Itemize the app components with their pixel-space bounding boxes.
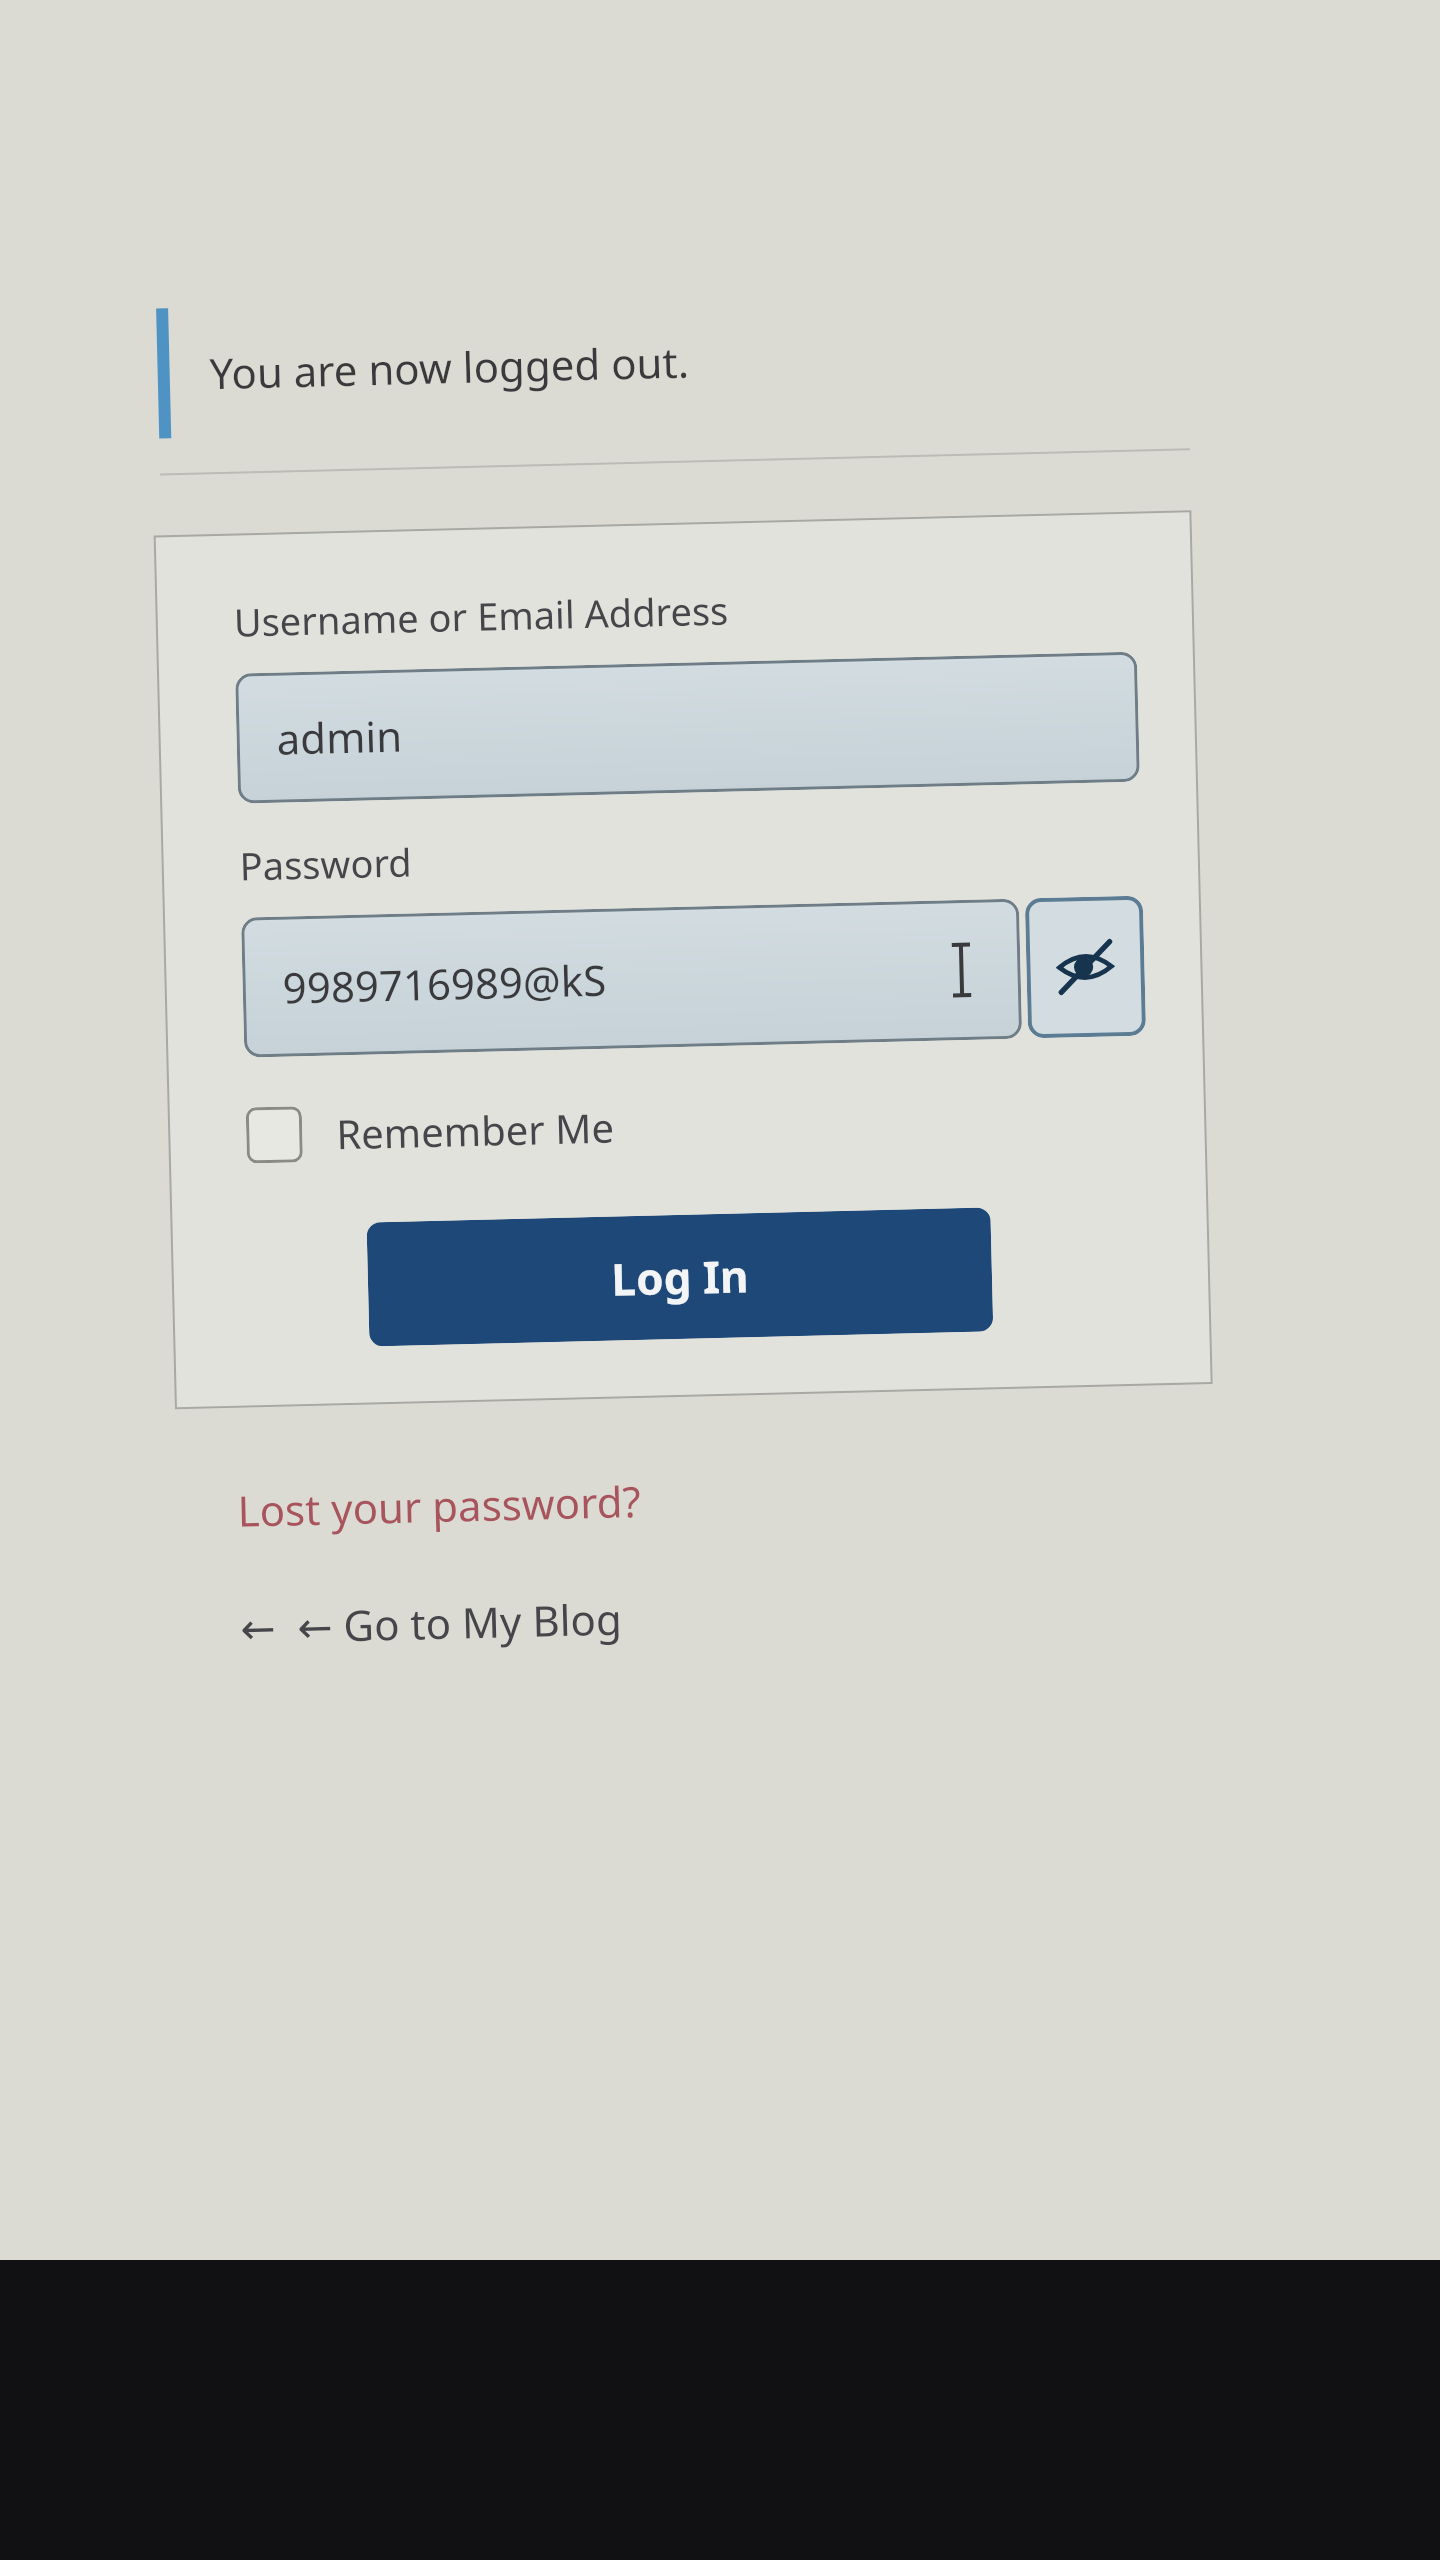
- staticText: Log In: [610, 1245, 750, 1309]
- staticText: Username or Email Address: [233, 584, 729, 648]
- button[interactable]: Show password: [1025, 896, 1146, 1038]
- button[interactable]: ← ← Go to My Blog: [239, 1581, 623, 1664]
- staticText: Password: [239, 835, 412, 892]
- button[interactable]: Log In: [366, 1207, 993, 1347]
- button[interactable]: admin: [235, 652, 1140, 804]
- staticText: ← ← Go to My Blog: [240, 1589, 623, 1656]
- staticText: Remember Me: [336, 1099, 615, 1160]
- staticText: 9989716989@kS: [282, 951, 607, 1016]
- staticText: You are now logged out.: [209, 332, 690, 401]
- staticText: admin: [276, 707, 403, 767]
- button[interactable]: Remember Me: [245, 1092, 615, 1169]
- button[interactable]: 9989716989@kS: [241, 899, 1022, 1058]
- staticText: Lost your password?: [237, 1472, 642, 1539]
- button[interactable]: Lost your password?: [237, 1464, 642, 1547]
